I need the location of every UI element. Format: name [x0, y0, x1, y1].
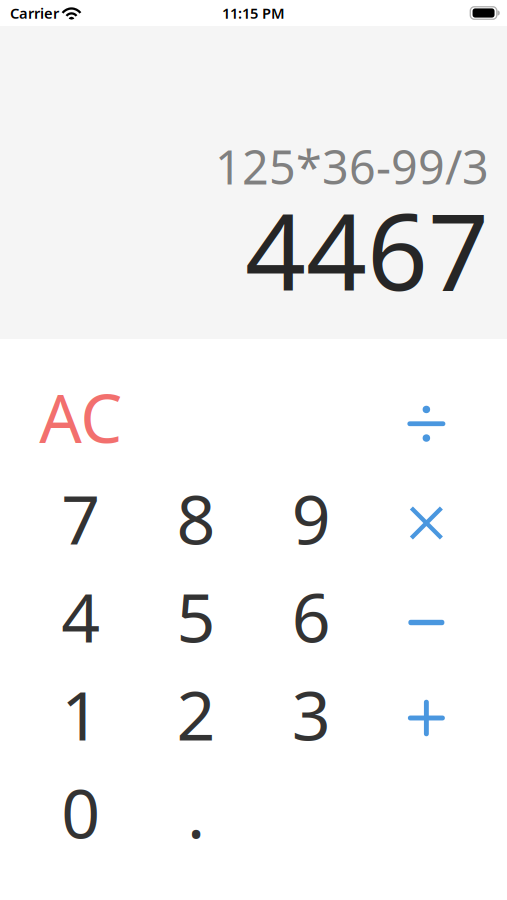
button[interactable]: Add: [369, 665, 484, 763]
staticText: 6: [292, 571, 331, 661]
staticText: .: [187, 767, 205, 857]
staticText: AC: [39, 373, 122, 461]
staticText: 1: [61, 669, 100, 759]
staticText: 4: [61, 571, 100, 661]
button[interactable]: Multiply: [369, 469, 484, 567]
button[interactable]: 0: [23, 763, 138, 861]
button[interactable]: 8: [138, 469, 253, 567]
button[interactable]: 1: [23, 665, 138, 763]
staticText: 2: [176, 669, 215, 759]
staticText: 4467: [245, 178, 489, 320]
button[interactable]: 3: [253, 665, 369, 763]
staticText: Carrier: [10, 3, 59, 23]
button[interactable]: 9: [253, 469, 369, 567]
staticText: 7: [61, 473, 100, 563]
staticText: 5: [176, 571, 215, 661]
button[interactable]: .: [138, 763, 253, 861]
button[interactable]: 2: [138, 665, 253, 763]
button[interactable]: Subtract: [369, 567, 484, 665]
button[interactable]: 6: [253, 567, 369, 665]
button[interactable]: AC: [23, 365, 138, 469]
button[interactable]: 7: [23, 469, 138, 567]
staticText: 9: [292, 473, 331, 563]
button[interactable]: 4: [23, 567, 138, 665]
staticText: 125*36-99/3: [215, 135, 489, 197]
staticText: 0: [61, 767, 100, 857]
staticText: 3: [292, 669, 331, 759]
staticText: 8: [176, 473, 215, 563]
staticText: 11:15 PM: [222, 3, 285, 23]
button[interactable]: Divide: [369, 365, 484, 469]
button[interactable]: 5: [138, 567, 253, 665]
